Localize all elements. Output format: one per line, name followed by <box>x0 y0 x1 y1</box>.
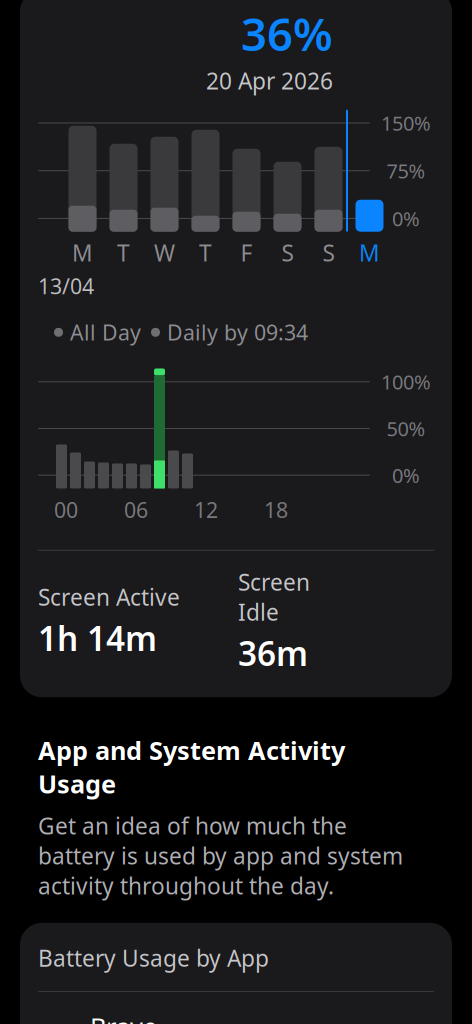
staticText: M <box>359 238 380 268</box>
staticText: T <box>117 238 130 268</box>
staticText: 00 <box>54 495 78 524</box>
staticText: 75% <box>386 157 425 184</box>
button[interactable]: Brave <box>20 992 452 1024</box>
staticText: All Day <box>70 318 141 346</box>
staticText: S <box>322 238 334 268</box>
staticText: App and System Activity Usage <box>38 733 345 801</box>
staticText: Screen Idle <box>238 567 310 627</box>
staticText: Daily by 09:34 <box>167 318 308 346</box>
staticText: 50% <box>386 415 425 442</box>
staticText: 12 <box>194 495 218 524</box>
staticText: F <box>240 238 252 268</box>
staticText: 150% <box>381 110 431 136</box>
staticText: 0% <box>392 462 420 488</box>
staticText: 36% <box>241 3 333 64</box>
staticText: 1h 14m <box>38 616 157 660</box>
staticText: Screen Active <box>38 582 180 612</box>
staticText: M <box>72 238 93 268</box>
staticText: 18 <box>264 495 288 524</box>
staticText: 06 <box>124 495 148 524</box>
staticText: W <box>154 238 175 268</box>
staticText: 36m <box>238 631 308 675</box>
staticText: Brave <box>90 1010 157 1024</box>
staticText: T <box>199 238 212 268</box>
staticText: 13/04 <box>38 272 94 300</box>
staticText: Get an idea of how much the battery is u… <box>38 811 403 901</box>
staticText: S <box>281 238 293 268</box>
staticText: 20 Apr 2026 <box>206 66 333 96</box>
staticText: Battery Usage by App <box>38 943 269 973</box>
staticText: 100% <box>381 368 431 395</box>
staticText: 0% <box>392 205 420 232</box>
